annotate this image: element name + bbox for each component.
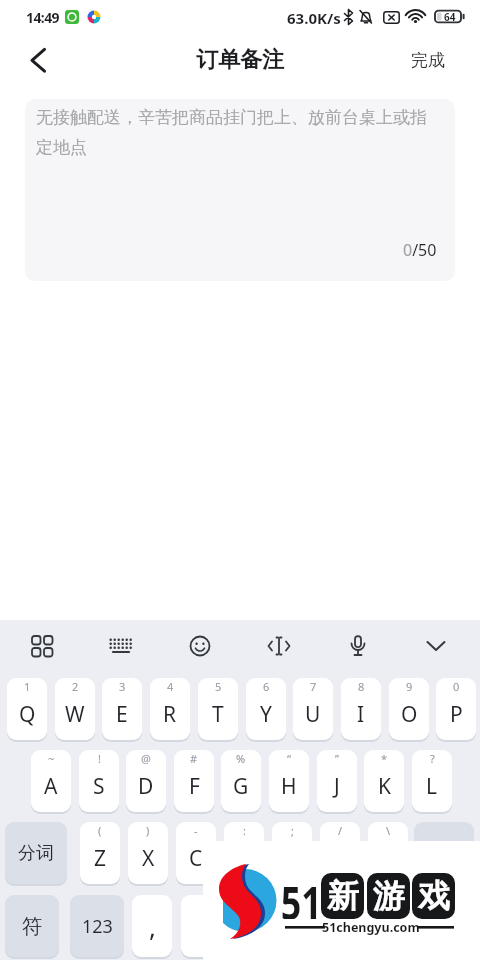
staticText: P — [450, 700, 463, 729]
staticText: D — [138, 772, 154, 801]
staticText: F — [189, 772, 200, 801]
staticText: ) — [146, 823, 150, 838]
button[interactable]: 9 — [389, 678, 429, 740]
button[interactable]: \ — [368, 822, 408, 884]
staticText: 8 — [358, 679, 365, 694]
button[interactable]: 4 — [150, 678, 190, 740]
button[interactable]: , — [132, 895, 172, 957]
button[interactable]: % — [221, 750, 261, 812]
staticText: V — [238, 844, 251, 873]
button[interactable]: 完成 — [398, 42, 458, 78]
button[interactable]: ! — [79, 750, 119, 812]
staticText: “ — [287, 751, 291, 766]
button[interactable] — [414, 895, 474, 957]
staticText: * — [381, 751, 388, 766]
staticText: # — [190, 751, 198, 766]
staticText: 7 — [310, 679, 317, 694]
button[interactable]: * — [364, 750, 404, 812]
staticText: @ — [141, 751, 151, 766]
staticText: ! — [98, 751, 101, 766]
staticText: U — [305, 700, 321, 729]
button[interactable]: 51 — [203, 841, 480, 960]
button[interactable] — [303, 895, 343, 957]
staticText: 订单备注 — [0, 46, 480, 74]
button[interactable]: ” — [317, 750, 357, 812]
staticText: O — [401, 700, 418, 729]
button[interactable]: / — [320, 822, 360, 884]
button[interactable]: 0 — [436, 678, 476, 740]
staticText: % — [236, 751, 246, 766]
button[interactable]: “ — [269, 750, 309, 812]
button[interactable]: - — [176, 822, 216, 884]
button[interactable]: 123 — [70, 895, 124, 957]
staticText: X — [142, 844, 155, 873]
button[interactable] — [259, 626, 299, 666]
staticText: : — [243, 823, 246, 838]
button[interactable]: 符 — [5, 895, 59, 957]
staticText: , — [149, 909, 156, 944]
staticText: ( — [98, 823, 102, 838]
button[interactable]: : — [224, 822, 264, 884]
staticText: 2 — [72, 679, 79, 694]
staticText: W — [65, 700, 85, 729]
staticText: Q — [19, 700, 36, 729]
staticText: C — [189, 844, 203, 873]
staticText: Z — [94, 844, 107, 873]
button[interactable]: 2 — [55, 678, 95, 740]
button[interactable] — [352, 895, 406, 957]
staticText: 戏 — [418, 876, 450, 916]
staticText: 游 — [373, 876, 405, 916]
staticText: 51 — [281, 871, 322, 919]
button[interactable] — [181, 895, 295, 957]
button[interactable]: @ — [126, 750, 166, 812]
staticText: 符 — [22, 914, 42, 939]
button[interactable] — [338, 626, 378, 666]
button[interactable]: ? — [412, 750, 452, 812]
staticText: - — [194, 823, 198, 838]
staticText: 3 — [119, 679, 126, 694]
staticText: A — [44, 772, 58, 801]
staticText: 14:49 — [26, 8, 59, 27]
staticText: 新 — [327, 876, 359, 916]
button[interactable]: 1 — [7, 678, 47, 740]
staticText: 1 — [24, 679, 31, 694]
staticText: ; — [291, 823, 294, 838]
button[interactable]: ) — [128, 822, 168, 884]
button[interactable]: 8 — [341, 678, 381, 740]
button[interactable]: 3 — [102, 678, 142, 740]
button[interactable]: 无接触配送，辛苦把商品挂门把上、放前台桌上或指 定地点 — [25, 99, 455, 281]
button[interactable] — [22, 626, 62, 666]
button[interactable] — [416, 626, 456, 666]
button[interactable] — [414, 822, 474, 884]
staticText: \ — [386, 823, 391, 838]
staticText: 0 — [453, 679, 460, 694]
staticText: 5 — [215, 679, 222, 694]
button[interactable] — [180, 626, 220, 666]
staticText: ? — [430, 751, 435, 766]
button[interactable]: 7 — [293, 678, 333, 740]
button[interactable] — [101, 626, 141, 666]
staticText: 分词 — [18, 842, 54, 865]
button[interactable]: 5 — [198, 678, 238, 740]
staticText: K — [378, 772, 391, 801]
staticText: G — [233, 772, 249, 801]
button[interactable] — [18, 44, 58, 76]
staticText: Y — [260, 700, 272, 729]
staticText: 9 — [406, 679, 413, 694]
staticText: 51chengyu.com — [322, 919, 420, 936]
staticText: 无接触配送，辛苦把商品挂门把上、放前台桌上或指 定地点 — [36, 107, 448, 158]
staticText: I — [357, 700, 365, 729]
staticText: E — [116, 700, 128, 729]
button[interactable]: ~ — [31, 750, 71, 812]
button[interactable]: # — [174, 750, 214, 812]
button[interactable]: 6 — [246, 678, 286, 740]
button[interactable]: ; — [272, 822, 312, 884]
button[interactable]: 分词 — [5, 822, 67, 884]
staticText: / — [338, 823, 343, 838]
staticText: ” — [335, 751, 339, 766]
button[interactable]: ( — [80, 822, 120, 884]
staticText: 完成 — [411, 50, 445, 71]
staticText: 123 — [82, 914, 113, 939]
staticText: 4 — [167, 679, 174, 694]
